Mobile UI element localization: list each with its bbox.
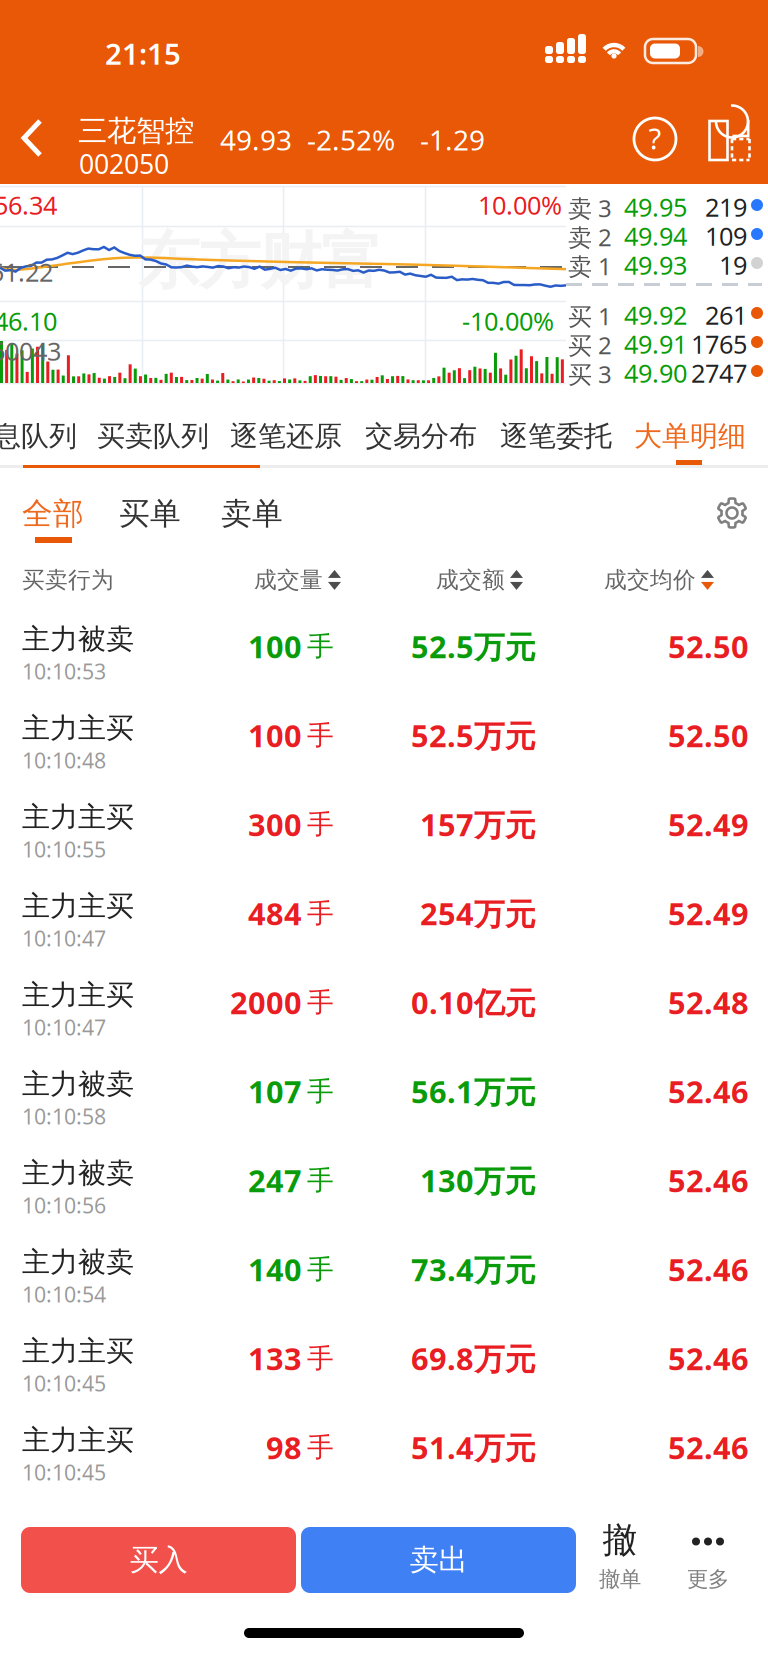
staticText: 更多 [687, 1566, 729, 1592]
staticText: 买卖队列 [97, 419, 209, 453]
staticText: 140 [248, 1249, 302, 1290]
staticText: 49.94 [624, 219, 687, 253]
staticText: 手 [307, 986, 334, 1019]
staticText: 56.34 [0, 188, 57, 222]
staticText: 98 [266, 1427, 302, 1468]
button[interactable]: 撤 [592, 1519, 648, 1595]
staticText: 51.4万元 [411, 1427, 536, 1468]
staticText: 主力主买 [22, 978, 134, 1012]
staticText: 69.8万元 [411, 1338, 536, 1379]
button[interactable]: 逐笔还原 [230, 419, 342, 453]
staticText: 100 [248, 626, 302, 667]
button[interactable]: Back [20, 118, 44, 158]
staticText: 52.46 [668, 1338, 749, 1379]
button[interactable]: 买卖队列 [97, 419, 209, 453]
staticText: 成交量 [254, 566, 323, 594]
staticText: 300 [248, 804, 302, 845]
staticText: 买单 [119, 495, 181, 533]
staticText: 247 [248, 1160, 302, 1201]
button[interactable]: 成交额 [436, 566, 523, 594]
staticText: 大单明细 [634, 419, 746, 453]
staticText: 撤 [602, 1519, 637, 1562]
staticText: 手 [307, 897, 334, 930]
button[interactable]: 交易分布 [365, 419, 477, 453]
button[interactable]: 买入 [21, 1527, 296, 1593]
staticText: 157万元 [420, 804, 536, 845]
button[interactable]: 卖出 [301, 1527, 576, 1593]
staticText: 手 [307, 1253, 334, 1286]
staticText: -2.52% [307, 121, 395, 158]
staticText: 109 [705, 219, 747, 253]
staticText: 10:10:55 [22, 835, 106, 863]
staticText: 主力主买 [22, 1423, 134, 1457]
staticText: 三花智控 [78, 113, 194, 149]
staticText: 56.1万元 [411, 1071, 536, 1112]
staticText: 52.5万元 [411, 715, 536, 756]
button[interactable]: 更多 [680, 1519, 736, 1595]
staticText: 10:10:54 [22, 1280, 106, 1308]
staticText: 买 3 [568, 358, 612, 390]
staticText: 成交均价 [604, 566, 696, 594]
staticText: 手 [307, 1164, 334, 1197]
button[interactable]: 成交均价 [604, 566, 714, 594]
staticText: 主力主买 [22, 711, 134, 745]
staticText: 73.4万元 [411, 1249, 536, 1290]
staticText: 卖 2 [568, 221, 612, 253]
staticText: 0.10亿元 [411, 982, 536, 1023]
staticText: 002050 [79, 146, 169, 181]
staticText: 52.5万元 [411, 626, 536, 667]
staticText: 手 [307, 719, 334, 752]
staticText: 10:10:56 [22, 1191, 106, 1219]
button[interactable]: Settings [717, 498, 747, 528]
staticText: 1765 [691, 327, 747, 361]
staticText: 买入 [129, 1542, 187, 1578]
staticText: 46.10 [0, 304, 57, 338]
staticText: 254万元 [420, 893, 536, 934]
staticText: 52.46 [668, 1427, 749, 1468]
staticText: 成交额 [436, 566, 505, 594]
staticText: 手 [307, 808, 334, 841]
button[interactable]: Help [633, 117, 677, 161]
staticText: 卖出 [409, 1542, 467, 1578]
button[interactable]: 买单 [119, 495, 181, 533]
staticText: 484 [248, 893, 302, 934]
button[interactable]: 全部 [22, 495, 84, 533]
staticText: 10:10:45 [22, 1458, 106, 1486]
staticText: 全部 [22, 495, 84, 533]
staticText: 卖单 [221, 495, 283, 533]
staticText: 主力主买 [22, 1334, 134, 1368]
staticText: 手 [307, 1075, 334, 1108]
staticText: 逐笔委托 [500, 419, 612, 453]
staticText: 主力被卖 [22, 1245, 134, 1279]
staticText: 主力主买 [22, 889, 134, 923]
button[interactable]: 成交量 [254, 566, 341, 594]
staticText: 107 [248, 1071, 302, 1112]
staticText: 19 [719, 248, 747, 282]
staticText: 买卖行为 [22, 566, 114, 594]
staticText: 10:10:45 [22, 1369, 106, 1397]
staticText: 130万元 [420, 1160, 536, 1201]
staticText: 10:10:53 [22, 657, 106, 685]
staticText: 息队列 [0, 419, 77, 453]
button[interactable]: Rotate screen [708, 119, 752, 163]
staticText: 10:10:48 [22, 746, 106, 774]
button[interactable]: 大单明细 [634, 419, 746, 453]
staticText: 逐笔还原 [230, 419, 342, 453]
staticText: -10.00% [462, 304, 554, 338]
staticText: 主力主买 [22, 800, 134, 834]
staticText: 手 [307, 1342, 334, 1375]
staticText: 2747 [691, 356, 747, 390]
staticText: 52.46 [668, 1071, 749, 1112]
button[interactable]: 卖单 [221, 495, 283, 533]
staticText: 52.46 [668, 1249, 749, 1290]
staticText: 买 1 [568, 300, 612, 332]
staticText: 52.50 [668, 626, 749, 667]
staticText: 交易分布 [365, 419, 477, 453]
staticText: 100 [248, 715, 302, 756]
button[interactable]: 息队列 [0, 419, 77, 453]
staticText: 219 [705, 190, 747, 224]
staticText: 49.93 [624, 248, 687, 282]
button[interactable]: 逐笔委托 [500, 419, 612, 453]
staticText: 52.49 [668, 804, 749, 845]
staticText: 49.93 [220, 121, 292, 158]
